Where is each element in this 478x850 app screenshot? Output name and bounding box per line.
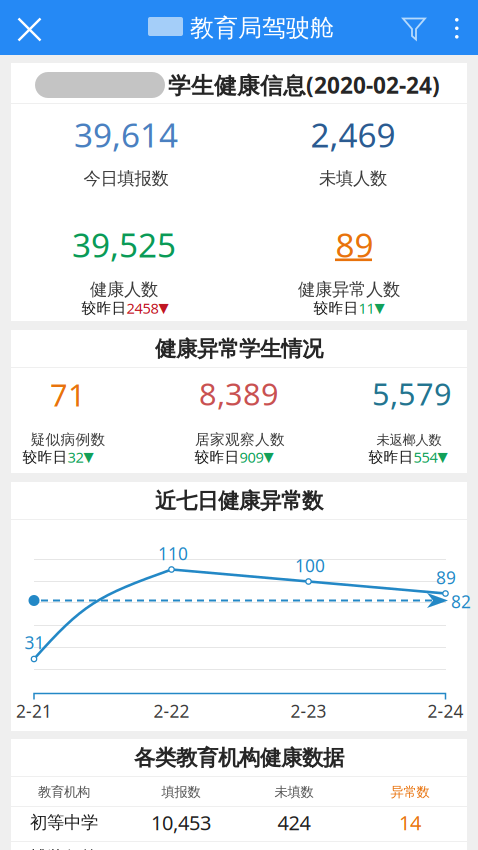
staticText: 居家观察人数	[195, 430, 285, 448]
button[interactable]: Close	[0, 0, 58, 55]
staticText: 博装师校	[30, 847, 98, 850]
staticText: 较昨日	[313, 299, 358, 317]
staticText: ▼	[83, 449, 93, 464]
staticText: 教育局驾驶舱	[190, 13, 334, 43]
staticText: 2458	[126, 298, 158, 318]
staticText: ▼	[158, 300, 168, 315]
staticText: 较昨日	[194, 448, 239, 466]
staticText: 未返榔人数	[376, 432, 441, 448]
staticText: 32	[67, 447, 83, 467]
staticText: ▼	[374, 300, 384, 315]
staticText: 909	[239, 447, 263, 467]
staticText: 近七日健康异常数	[155, 488, 323, 514]
staticText: 424	[277, 809, 310, 836]
staticText: 异常数	[390, 784, 429, 800]
staticText: 2-24	[427, 699, 463, 722]
staticText: 89	[436, 566, 456, 589]
staticText: 10,453	[151, 809, 211, 836]
staticText: 2-23	[290, 699, 326, 722]
staticText: 554	[413, 447, 437, 467]
staticText: 8,389	[199, 373, 279, 414]
staticText: 各类教育机构健康数据	[134, 745, 344, 771]
staticText: 疑似病例数	[30, 430, 105, 448]
staticText: 2-22	[153, 699, 189, 722]
staticText: 2,469	[310, 112, 395, 157]
staticText: 今日填报数	[83, 168, 168, 189]
staticText: 健康人数	[90, 279, 158, 300]
staticText: 未填数	[274, 784, 313, 800]
button[interactable]: More options	[438, 0, 478, 55]
staticText: 100	[295, 554, 325, 577]
staticText: 较昨日	[22, 448, 67, 466]
staticText: 健康异常人数	[298, 279, 400, 300]
staticText: 健康异常学生情况	[155, 336, 323, 362]
staticText: 110	[158, 542, 188, 565]
staticText: 71	[50, 374, 86, 415]
staticText: 未填人数	[319, 168, 387, 189]
staticText: 2-21	[16, 699, 52, 722]
staticText: 14	[399, 809, 421, 836]
staticText: 教育机构	[38, 784, 90, 800]
staticText: 较昨日	[81, 299, 126, 317]
staticText: 82	[451, 590, 471, 613]
staticText: ▼	[263, 449, 273, 464]
staticText: 学生健康信息(2020-02-24)	[168, 70, 440, 100]
staticText: ▼	[437, 449, 447, 464]
staticText: 31	[25, 631, 45, 654]
staticText: 初等中学	[30, 812, 98, 833]
staticText: 填报数	[161, 784, 200, 800]
staticText: 89	[335, 222, 373, 267]
staticText: 5,579	[372, 373, 452, 414]
staticText: 39,525	[72, 222, 176, 267]
staticText: 11	[358, 298, 374, 318]
staticText: 较昨日	[368, 448, 413, 466]
button[interactable]: Filter	[390, 0, 438, 55]
staticText: 39,614	[74, 112, 178, 157]
